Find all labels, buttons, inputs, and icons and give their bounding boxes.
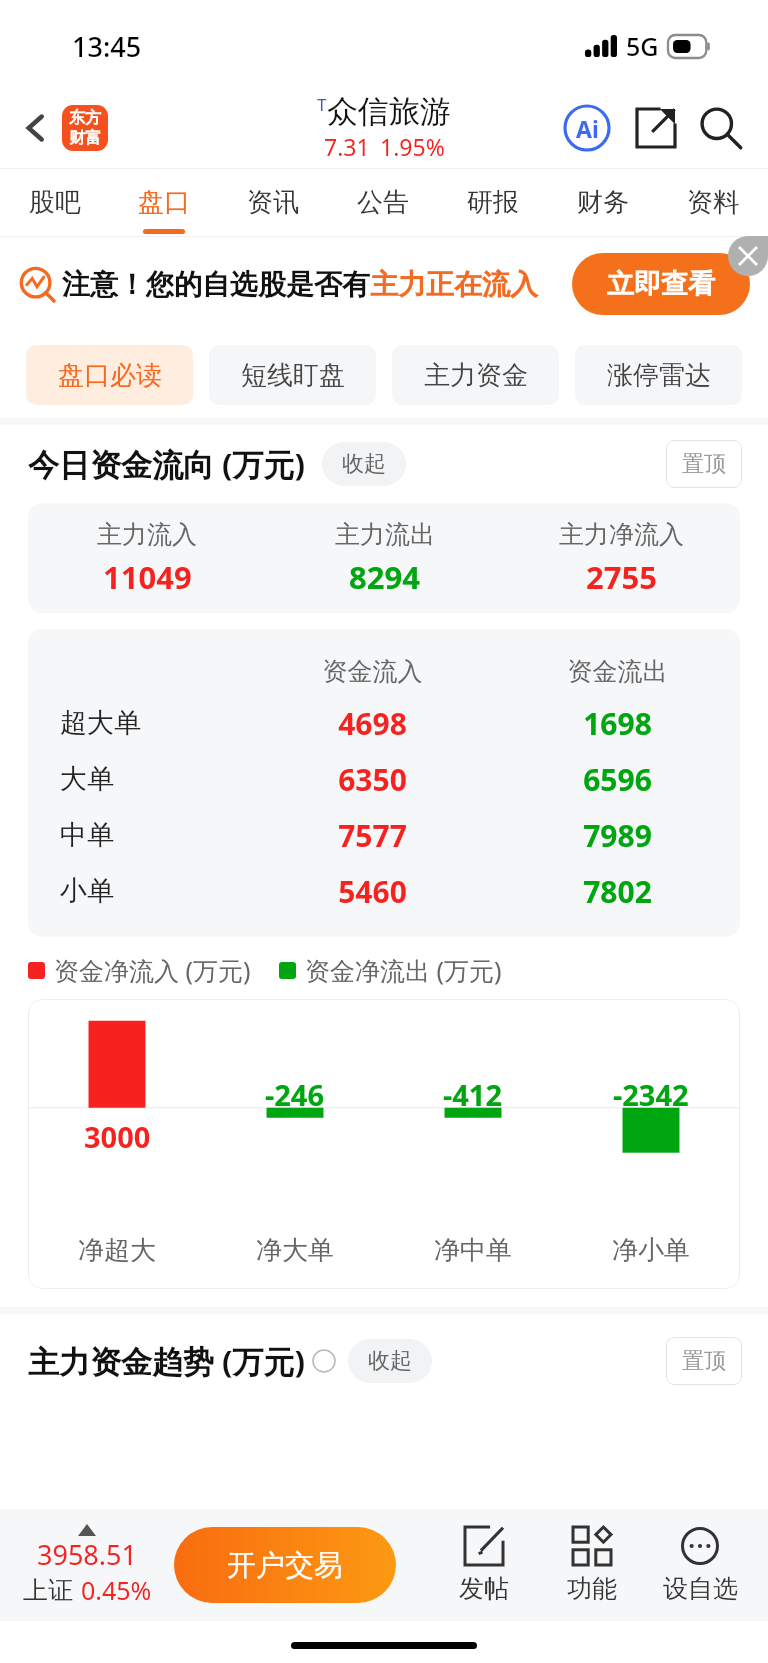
staticText: 净大单: [206, 1234, 384, 1267]
staticText: 主力净流入: [559, 519, 684, 550]
button[interactable]: 收起: [322, 442, 406, 486]
staticText: 开户交易: [227, 1547, 343, 1584]
button[interactable]: 功能: [538, 1527, 646, 1604]
button[interactable]: 公告: [328, 168, 438, 236]
staticText: 6596: [495, 759, 740, 800]
staticText: 11049: [103, 556, 192, 598]
button[interactable]: 超大单: [28, 695, 740, 751]
button[interactable]: 主力资金: [392, 345, 559, 405]
staticText: T: [317, 93, 327, 116]
staticText: 1.95%: [380, 131, 445, 162]
staticText: 净超大: [28, 1234, 206, 1267]
button[interactable]: 资料: [658, 168, 768, 236]
staticText: 东方: [69, 108, 101, 128]
staticText: 5G: [626, 29, 659, 63]
button[interactable]: 短线盯盘: [209, 345, 376, 405]
staticText: 盘口: [138, 186, 190, 219]
button[interactable]: 小单: [28, 863, 740, 919]
staticText: 盘口必读: [58, 359, 162, 392]
button[interactable]: AI: [558, 99, 616, 157]
button[interactable]: 设自选: [646, 1527, 754, 1604]
button[interactable]: 盘口: [109, 168, 218, 236]
staticText: 3958.51: [37, 1536, 137, 1573]
staticText: 7989: [495, 815, 740, 856]
staticText: 1698: [495, 703, 740, 744]
staticText: 财务: [577, 186, 629, 219]
button[interactable]: 开户交易: [174, 1527, 396, 1603]
staticText: 功能: [567, 1573, 617, 1604]
staticText: 资金流出: [495, 656, 740, 687]
staticText: 股吧: [29, 186, 81, 219]
staticText: 资料: [687, 186, 739, 219]
button[interactable]: 资讯: [218, 168, 328, 236]
button[interactable]: 财务: [548, 168, 658, 236]
button[interactable]: 盘口必读: [26, 345, 193, 405]
button[interactable]: Close: [728, 236, 768, 276]
staticText: 7.31: [324, 131, 370, 162]
staticText: 中单: [60, 818, 250, 852]
staticText: 短线盯盘: [241, 359, 345, 392]
staticText: 发帖: [459, 1573, 509, 1604]
button[interactable]: 收起: [348, 1339, 432, 1383]
staticText: 公告: [357, 186, 409, 219]
staticText: 主力流出: [335, 519, 435, 550]
staticText: 大单: [60, 762, 250, 796]
staticText: 资金净流出 (万元): [305, 953, 502, 987]
staticText: 主力正在流入: [370, 267, 538, 302]
staticText: 4698: [250, 703, 495, 744]
button[interactable]: 大单: [28, 751, 740, 807]
staticText: 注意！您的自选股是否有: [62, 267, 370, 302]
button[interactable]: 发帖: [430, 1527, 538, 1604]
staticText: -2342: [613, 1075, 689, 1114]
staticText: 今日资金流向 (万元): [28, 443, 306, 485]
button[interactable]: Back: [10, 102, 62, 154]
button[interactable]: 置顶: [666, 440, 742, 488]
staticText: 置顶: [682, 1347, 726, 1375]
staticText: 主力资金: [424, 359, 528, 392]
staticText: 主力流入: [97, 519, 197, 550]
button[interactable]: 研报: [438, 168, 548, 236]
button[interactable]: 3958.51: [14, 1524, 160, 1607]
staticText: 小单: [60, 874, 250, 908]
staticText: 净中单: [384, 1234, 562, 1267]
staticText: 收起: [368, 1347, 412, 1375]
staticText: 5460: [250, 871, 495, 912]
staticText: 2755: [586, 556, 657, 598]
staticText: 7802: [495, 871, 740, 912]
staticText: 13:45: [72, 28, 142, 65]
staticText: 超大单: [60, 706, 250, 740]
staticText: 资金流入: [250, 656, 495, 687]
button[interactable]: 中单: [28, 807, 740, 863]
staticText: Ai: [576, 113, 599, 144]
staticText: 研报: [467, 186, 519, 219]
staticText: 7577: [250, 815, 495, 856]
staticText: 3000: [84, 1117, 151, 1156]
button[interactable]: 股吧: [0, 168, 109, 236]
staticText: 置顶: [682, 450, 726, 478]
button[interactable]: 主力流入: [28, 503, 740, 613]
staticText: 主力资金趋势 (万元): [28, 1340, 306, 1382]
button[interactable]: 置顶: [666, 1337, 742, 1385]
button[interactable]: Search: [692, 99, 750, 157]
button[interactable]: 3000: [28, 999, 740, 1289]
staticText: 资讯: [247, 186, 299, 219]
staticText: 财富: [69, 128, 101, 148]
staticText: 收起: [342, 450, 386, 478]
staticText: 设自选: [663, 1573, 738, 1604]
staticText: 8294: [349, 556, 420, 598]
staticText: -412: [443, 1075, 503, 1114]
staticText: 涨停雷达: [607, 359, 711, 392]
staticText: 净小单: [562, 1234, 740, 1267]
staticText: 0.45%: [81, 1573, 152, 1607]
button[interactable]: Share: [628, 100, 684, 156]
button[interactable]: 涨停雷达: [575, 345, 742, 405]
staticText: 众信旅游: [327, 92, 451, 131]
button[interactable]: 东方财富: [62, 105, 108, 151]
staticText: 6350: [250, 759, 495, 800]
staticText: -246: [265, 1075, 325, 1114]
staticText: 立即查看: [607, 267, 715, 301]
staticText: 上证: [23, 1575, 73, 1606]
button[interactable]: 立即查看: [572, 253, 750, 315]
button[interactable]: 注意！您的自选股是否有: [20, 236, 750, 332]
staticText: 资金净流入 (万元): [54, 953, 251, 987]
